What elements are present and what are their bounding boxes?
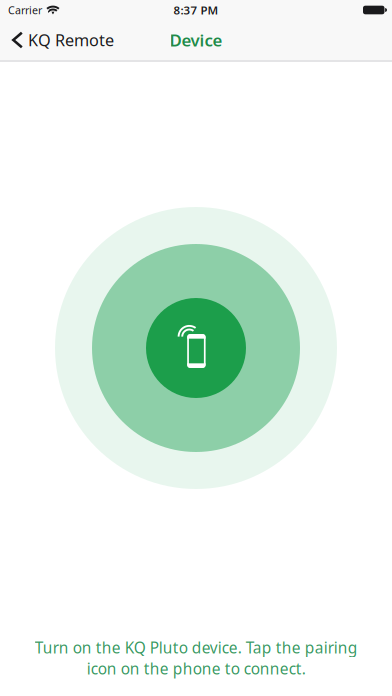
staticText: KQ Remote bbox=[28, 29, 114, 51]
staticText: Carrier bbox=[8, 3, 42, 17]
staticText: 8:37 PM bbox=[173, 2, 218, 18]
staticText: Turn on the KQ Pluto device. Tap the pai… bbox=[34, 637, 357, 679]
staticText: Device bbox=[169, 29, 222, 51]
button[interactable]: KQ Remote bbox=[0, 20, 124, 60]
